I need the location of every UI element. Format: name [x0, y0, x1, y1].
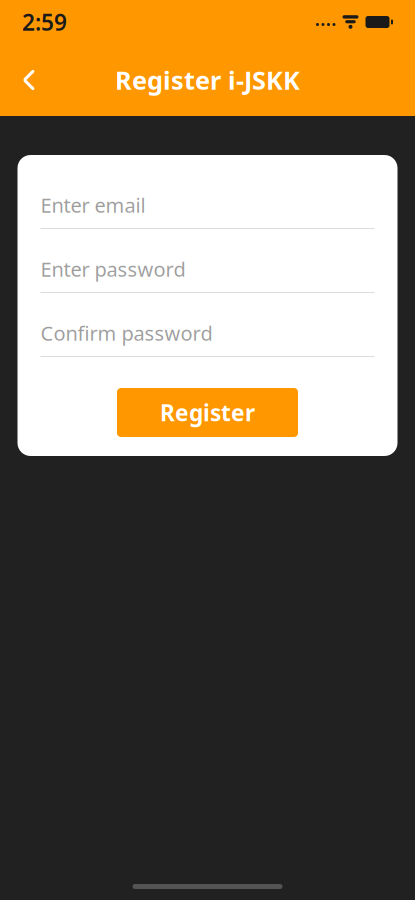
- staticText: Register i-JSKK: [115, 63, 300, 97]
- button[interactable]: Register: [117, 388, 298, 437]
- staticText: Enter password: [40, 256, 185, 282]
- button[interactable]: Back: [6, 57, 52, 103]
- staticText: Confirm password: [40, 320, 212, 346]
- staticText: 2:59: [22, 7, 67, 37]
- staticText: Enter email: [40, 192, 145, 218]
- staticText: Register: [160, 397, 255, 427]
